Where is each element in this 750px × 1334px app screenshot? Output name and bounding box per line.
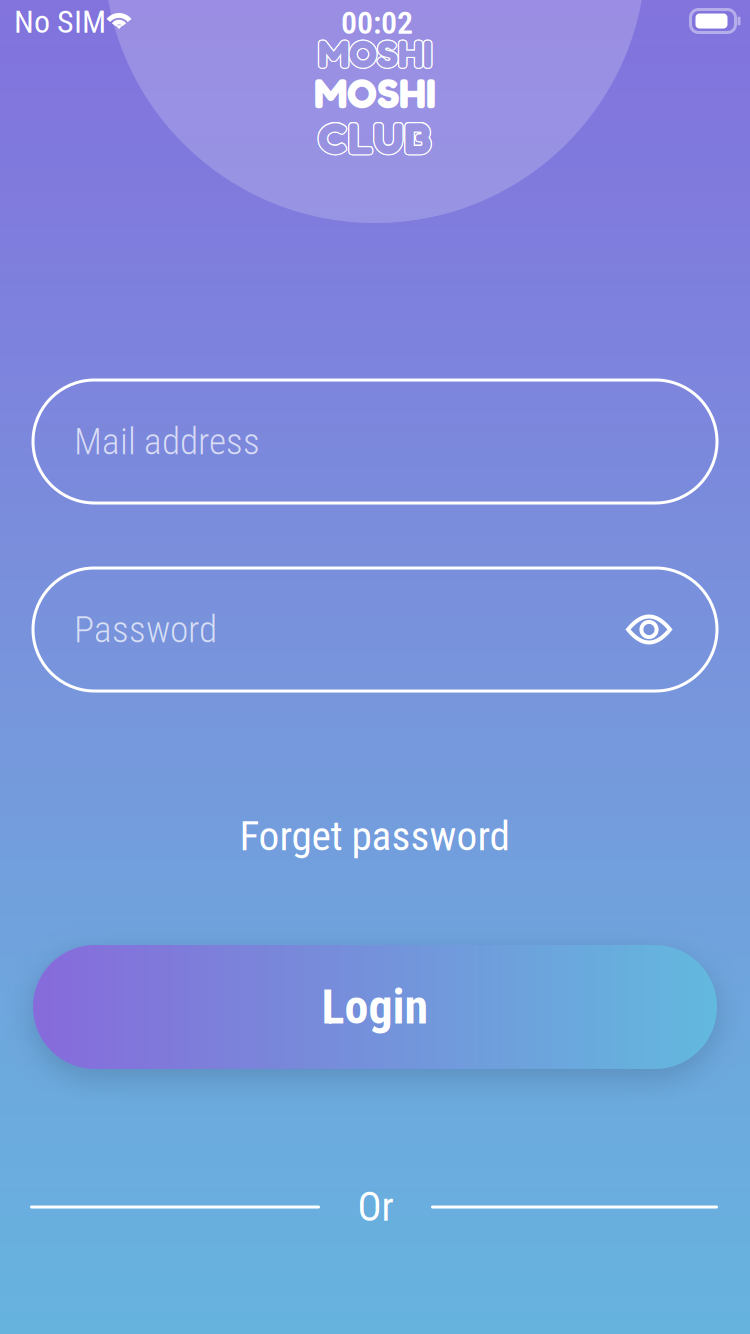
staticText: Or: [357, 1184, 393, 1230]
staticText: Forget password: [239, 812, 510, 860]
staticText: 00:02: [341, 4, 413, 41]
staticText: MOSHI: [319, 29, 433, 76]
staticText: CLUB: [317, 111, 431, 165]
staticText: MOSHI: [318, 31, 432, 78]
staticText: CLUB: [318, 111, 432, 166]
staticText: MOSHI: [314, 68, 436, 118]
button[interactable]: Show password: [625, 611, 673, 647]
staticText: CLUB: [318, 110, 432, 165]
staticText: MOSHI: [319, 30, 433, 77]
button[interactable]: Forget password: [0, 810, 750, 862]
staticText: CLUB: [317, 109, 431, 164]
staticText: MOSHI: [317, 30, 431, 77]
staticText: CLUB: [319, 110, 433, 165]
button[interactable]: Login: [33, 945, 717, 1069]
staticText: MOSHI: [317, 31, 431, 78]
staticText: MOSHI: [317, 29, 431, 76]
staticText: MOSHI: [319, 31, 433, 78]
staticText: MOSHI: [318, 29, 432, 76]
staticText: Password: [74, 608, 217, 651]
staticText: Mail address: [74, 420, 260, 463]
staticText: MOSHI: [317, 29, 431, 76]
staticText: CLUB: [317, 111, 431, 166]
staticText: CLUB: [318, 109, 432, 164]
staticText: CLUB: [317, 109, 431, 164]
staticText: CLUB: [319, 111, 433, 166]
staticText: MOSHI: [317, 31, 431, 77]
staticText: CLUB: [319, 109, 433, 164]
staticText: No SIM: [14, 3, 106, 40]
staticText: MOSHI: [319, 29, 433, 76]
staticText: CLUB: [317, 110, 431, 165]
staticText: CLUB: [319, 111, 433, 165]
staticText: MOSHI: [319, 31, 433, 77]
staticText: CLUB: [319, 109, 433, 164]
staticText: Login: [321, 979, 428, 1035]
staticText: MOSHI: [318, 30, 432, 77]
